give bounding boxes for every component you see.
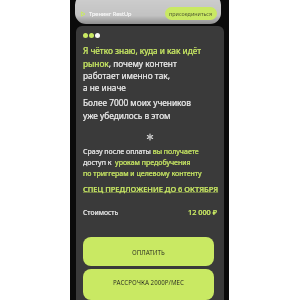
other: Play — [80, 11, 86, 17]
button[interactable]: РАССРОЧКА 2000Р/МЕС — [83, 269, 214, 300]
staticText: 12 000 ₽ — [188, 207, 217, 217]
staticText: присоединиться — [169, 10, 213, 17]
staticText: Более 7000 моих учеников уже убедилось в… — [83, 97, 191, 121]
button[interactable]: Play — [75, 0, 221, 24]
staticText: Тренинг RestUp — [89, 10, 132, 18]
staticText: Стоимость — [83, 208, 119, 217]
staticText: Я чётко знаю, куда и как идёт рынок, поч… — [83, 45, 202, 93]
staticText: ОПЛАТИТЬ — [132, 248, 165, 256]
staticText: Сразу после оплаты вы получаете доступ к… — [83, 147, 202, 178]
staticText: РАССРОЧКА 2000Р/МЕС — [113, 278, 185, 286]
button[interactable]: ОПЛАТИТЬ — [83, 237, 214, 266]
button[interactable]: СПЕЦ ПРЕДЛОЖЕНИЕ ДО 6 ОКТЯБРЯ — [83, 184, 219, 194]
button[interactable]: присоединиться — [165, 7, 217, 20]
